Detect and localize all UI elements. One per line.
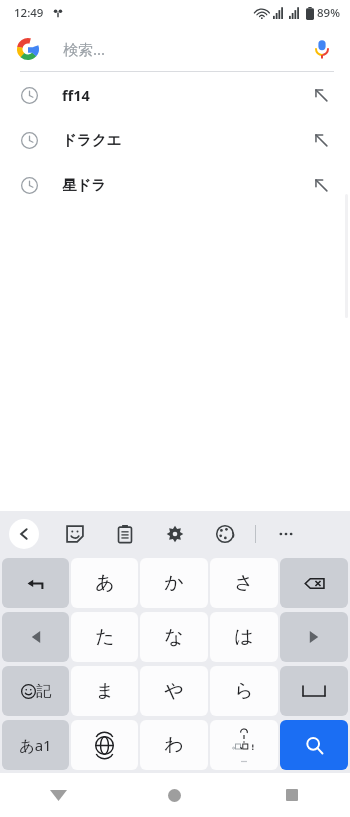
staticText: さ — [234, 571, 254, 595]
button[interactable]: Insert ff14 — [310, 84, 332, 106]
button[interactable]: ら — [210, 666, 278, 716]
button[interactable]: Recent apps — [233, 773, 350, 817]
button[interactable]: Home — [116, 773, 233, 817]
staticText: あa1 — [19, 735, 52, 755]
button[interactable]: わ — [140, 720, 208, 770]
button[interactable]: Emoji and symbols — [2, 666, 69, 716]
button[interactable]: Themes — [211, 520, 239, 548]
button[interactable]: Settings — [161, 520, 189, 548]
staticText: や — [164, 679, 184, 703]
button[interactable]: 星ドラ — [0, 162, 350, 207]
staticText: ま — [95, 679, 115, 703]
button[interactable]: た — [71, 612, 138, 662]
staticText: 星ドラ — [62, 176, 310, 194]
button[interactable]: ff14 — [0, 72, 350, 117]
button[interactable]: は — [210, 612, 278, 662]
button[interactable]: Undo — [2, 558, 69, 608]
button[interactable]: あa1 — [2, 720, 69, 770]
staticText: 89% — [317, 5, 340, 21]
button[interactable]: Insert ドラクエ — [310, 129, 332, 151]
button[interactable]: や — [140, 666, 208, 716]
staticText: ら — [234, 679, 254, 703]
staticText: 記 — [36, 682, 51, 701]
staticText: ff14 — [62, 85, 310, 105]
button[interactable]: さ — [210, 558, 278, 608]
button[interactable]: Move cursor left — [2, 612, 69, 662]
button[interactable]: ま — [71, 666, 138, 716]
button[interactable]: More options — [272, 520, 300, 548]
button[interactable]: Back — [9, 519, 39, 549]
button[interactable]: Insert 星ドラ — [310, 174, 332, 196]
button[interactable]: Space — [280, 666, 348, 716]
staticText: は — [234, 625, 254, 649]
staticText: た — [95, 625, 115, 649]
staticText: ドラクエ — [62, 131, 310, 149]
button[interactable]: な — [140, 612, 208, 662]
button[interactable]: Switch language — [71, 720, 138, 770]
staticText: な — [164, 625, 184, 649]
button[interactable]: Punctuation — [210, 720, 278, 770]
staticText: あ — [95, 571, 115, 595]
button[interactable]: Search — [280, 720, 348, 770]
button[interactable]: Voice search — [308, 35, 336, 63]
button[interactable]: Stickers — [61, 520, 89, 548]
button[interactable]: あ — [71, 558, 138, 608]
button[interactable]: Delete — [280, 558, 348, 608]
staticText: 12:49 — [14, 5, 44, 21]
button[interactable]: Hide keyboard — [0, 773, 116, 817]
button[interactable]: 検索... — [63, 39, 308, 59]
staticText: か — [164, 571, 184, 595]
button[interactable]: Move cursor right — [280, 612, 348, 662]
button[interactable]: か — [140, 558, 208, 608]
staticText: わ — [164, 733, 184, 757]
button[interactable]: Google — [15, 36, 41, 62]
button[interactable]: Clipboard — [111, 520, 139, 548]
button[interactable]: ドラクエ — [0, 117, 350, 162]
